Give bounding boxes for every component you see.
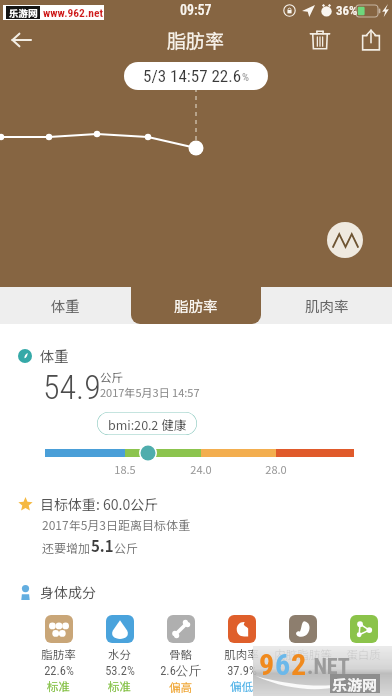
staticText: 还要增加 bbox=[42, 539, 91, 556]
staticText: 身体成分 bbox=[40, 582, 96, 602]
staticText: 36% bbox=[336, 3, 358, 18]
staticText: 6 bbox=[275, 647, 291, 682]
staticText: 蛋白质 bbox=[346, 646, 381, 663]
staticText: 54.9 bbox=[43, 367, 101, 407]
staticText: 5.1 bbox=[91, 535, 114, 557]
staticText: 18.5 bbox=[108, 461, 142, 477]
staticText: 2.6公斤 bbox=[160, 663, 201, 679]
staticText: 体重 bbox=[51, 295, 80, 316]
staticText: 脂肪率 bbox=[41, 646, 76, 663]
button[interactable]: 内脏脂肪等 bbox=[272, 615, 333, 695]
button[interactable]: Delete bbox=[298, 18, 342, 62]
staticText: 2 bbox=[291, 647, 307, 682]
staticText: 53.2% bbox=[105, 663, 135, 678]
staticText: 骨骼 bbox=[169, 646, 192, 663]
staticText: 5/3 14:57 22.6 bbox=[143, 66, 242, 86]
button[interactable]: View chart bbox=[327, 222, 363, 258]
button[interactable]: 脂肪率 bbox=[28, 615, 89, 695]
button[interactable]: 肌肉率 bbox=[261, 287, 392, 324]
staticText: 体重 bbox=[40, 345, 69, 366]
staticText: 公斤 bbox=[114, 539, 139, 556]
button[interactable]: 肌肉率 bbox=[211, 615, 272, 695]
button[interactable]: 骨骼 bbox=[150, 615, 211, 696]
staticText: 标准 bbox=[108, 678, 131, 695]
staticText: 28.0 bbox=[259, 461, 293, 477]
staticText: .NET bbox=[307, 654, 350, 680]
staticText: bmi:20.2 健康 bbox=[108, 415, 187, 433]
staticText: 脂肪率 bbox=[174, 295, 218, 316]
staticText: 脂肪率 bbox=[167, 26, 225, 54]
staticText: 9 bbox=[259, 647, 275, 682]
staticText: 标准 bbox=[47, 678, 70, 695]
button[interactable]: 体重 bbox=[0, 287, 131, 324]
staticText: 2017年5月3日距离目标体重 bbox=[42, 516, 190, 533]
staticText: 2017年5月3日 14:57 bbox=[100, 384, 200, 400]
staticText: 目标体重: 60.0公斤 bbox=[40, 494, 159, 514]
button[interactable]: Back bbox=[0, 19, 42, 61]
staticText: 肌肉率 bbox=[224, 646, 259, 663]
staticText: 肌肉率 bbox=[305, 295, 349, 316]
staticText: 偏高 bbox=[169, 679, 192, 696]
staticText: 37.9% bbox=[227, 663, 257, 678]
staticText: 乐游网 bbox=[9, 6, 38, 19]
staticText: 乐游网 bbox=[332, 674, 378, 693]
button[interactable]: 脂肪率 bbox=[131, 287, 261, 324]
button[interactable]: 水分 bbox=[89, 615, 150, 695]
button[interactable]: 蛋白质 bbox=[333, 615, 392, 695]
button[interactable]: bmi:20.2 健康 bbox=[97, 412, 197, 435]
staticText: 公斤 bbox=[100, 369, 123, 386]
staticText: 24.0 bbox=[184, 461, 218, 477]
staticText: www.962.net bbox=[43, 6, 103, 19]
staticText: 水分 bbox=[108, 646, 131, 663]
staticText: 09:57 bbox=[180, 2, 212, 18]
staticText: 22.6% bbox=[44, 663, 74, 678]
staticText: 内脏脂肪等 bbox=[274, 646, 332, 663]
staticText: % bbox=[242, 71, 249, 84]
staticText: 偏低 bbox=[230, 678, 253, 695]
button[interactable]: Share bbox=[349, 18, 392, 62]
